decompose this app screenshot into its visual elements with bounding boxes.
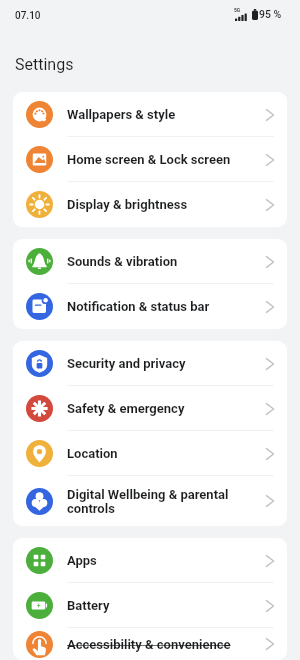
staticText: 07.10 (15, 10, 41, 22)
button[interactable]: Display & brightness (13, 182, 287, 227)
staticText: Settings (15, 55, 74, 74)
button[interactable]: Safety & emergency (13, 386, 287, 431)
staticText: Battery (67, 598, 258, 613)
staticText: Notification & status bar (67, 299, 258, 314)
button[interactable]: Digital Wellbeing & parental controls (13, 476, 287, 526)
button[interactable]: Location (13, 431, 287, 476)
button[interactable]: Security and privacy (13, 341, 287, 386)
staticText: Security and privacy (67, 356, 258, 371)
staticText: Apps (67, 553, 258, 568)
staticText: Digital Wellbeing & parental controls (67, 487, 258, 516)
staticText: Sounds & vibration (67, 254, 258, 269)
staticText: Wallpapers & style (67, 107, 258, 122)
button[interactable]: Accessibility & convenience (13, 628, 287, 660)
staticText: Accessibility & convenience (67, 637, 258, 652)
staticText: Safety & emergency (67, 401, 258, 416)
button[interactable]: Apps (13, 538, 287, 583)
staticText: Display & brightness (67, 197, 258, 212)
staticText: 95 % (259, 8, 282, 20)
button[interactable]: Wallpapers & style (13, 92, 287, 137)
staticText: Location (67, 446, 258, 461)
button[interactable]: Notification & status bar (13, 284, 287, 329)
button[interactable]: Home screen & Lock screen (13, 137, 287, 182)
button[interactable]: Sounds & vibration (13, 239, 287, 284)
staticText: 5G (234, 7, 241, 13)
button[interactable]: Battery (13, 583, 287, 628)
staticText: Home screen & Lock screen (67, 152, 258, 167)
